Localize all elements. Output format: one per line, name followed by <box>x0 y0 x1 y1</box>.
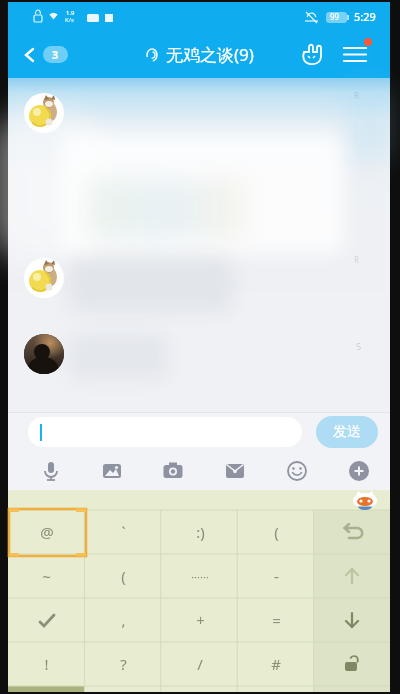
staticText: 3 <box>52 47 59 62</box>
button[interactable] <box>314 554 390 598</box>
button[interactable]: / <box>162 642 238 686</box>
staticText: , <box>121 610 126 630</box>
staticText: ! <box>44 654 49 674</box>
button[interactable] <box>328 452 390 490</box>
button[interactable]: 发送 <box>316 416 378 448</box>
button[interactable] <box>28 417 302 447</box>
button[interactable]: ( <box>238 510 314 554</box>
staticText: - <box>274 566 279 586</box>
button[interactable]: ~ <box>8 554 85 598</box>
button[interactable] <box>297 39 327 69</box>
staticText: :) <box>196 522 205 542</box>
button[interactable]: # <box>238 642 314 686</box>
button[interactable]: = <box>238 598 314 642</box>
button[interactable]: , <box>85 598 162 642</box>
button[interactable]: :) <box>162 510 238 554</box>
staticText: 5:29 <box>354 9 376 24</box>
staticText: ( <box>121 566 126 586</box>
staticText: @ <box>40 522 54 542</box>
staticText: 1.9 <box>66 9 75 17</box>
button[interactable] <box>314 510 390 554</box>
button[interactable]: - <box>238 554 314 598</box>
button[interactable]: ! <box>8 642 85 686</box>
staticText: 99 <box>330 11 340 22</box>
staticText: 5 <box>356 340 362 352</box>
button[interactable]: 无鸡之谈(9) <box>145 43 254 66</box>
staticText: / <box>197 654 203 674</box>
staticText: 无鸡之谈(9) <box>166 43 254 66</box>
button[interactable]: ( <box>85 554 162 598</box>
button[interactable]: ` <box>85 510 162 554</box>
button[interactable]: @ <box>8 510 85 554</box>
button[interactable] <box>24 334 64 374</box>
button[interactable] <box>314 598 390 642</box>
staticText: # <box>271 654 281 674</box>
button[interactable] <box>24 93 64 133</box>
button[interactable] <box>8 598 85 642</box>
staticText: K/s <box>65 16 74 24</box>
button[interactable]: ? <box>85 642 162 686</box>
button[interactable] <box>204 452 266 490</box>
staticText: ( <box>274 522 279 542</box>
staticText: R <box>354 90 359 101</box>
button[interactable]: ······ <box>162 554 238 598</box>
staticText: + <box>196 610 205 630</box>
button[interactable] <box>266 452 328 490</box>
staticText: ······ <box>191 569 209 584</box>
button[interactable]: + <box>162 598 238 642</box>
staticText: ? <box>120 654 127 674</box>
staticText: = <box>272 610 281 630</box>
button[interactable]: 3 <box>22 46 68 63</box>
button[interactable] <box>142 452 204 490</box>
button[interactable] <box>314 642 390 686</box>
staticText: ~ <box>42 566 51 586</box>
button[interactable] <box>340 39 370 69</box>
staticText: 发送 <box>333 423 361 441</box>
button[interactable] <box>81 452 142 490</box>
button[interactable] <box>20 452 81 490</box>
button[interactable] <box>24 258 64 298</box>
staticText: ` <box>121 522 126 542</box>
staticText: R <box>354 254 359 265</box>
